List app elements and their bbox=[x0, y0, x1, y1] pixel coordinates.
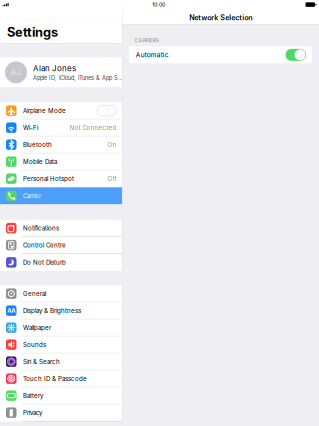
staticText: Siri & Search bbox=[23, 358, 60, 365]
button[interactable]: Touch ID & Passcode bbox=[0, 370, 122, 387]
staticText: Wallpaper bbox=[23, 324, 51, 331]
button[interactable]: Sounds bbox=[0, 336, 122, 353]
button[interactable]: Personal Hotspot bbox=[0, 170, 122, 187]
staticText: AJ bbox=[10, 68, 21, 77]
staticText: Display & Brightness bbox=[23, 307, 81, 314]
staticText: Not Connected bbox=[69, 124, 116, 131]
staticText: Sounds bbox=[23, 341, 46, 348]
staticText: Alan Jones bbox=[33, 64, 76, 73]
button[interactable]: Wallpaper bbox=[0, 319, 122, 336]
button[interactable]: Control Centre bbox=[0, 237, 122, 254]
staticText: 10:00 bbox=[152, 1, 165, 8]
staticText: Do Not Disturb bbox=[23, 259, 66, 266]
button[interactable]: Battery bbox=[0, 387, 122, 404]
staticText: Bluetooth bbox=[23, 141, 52, 148]
button[interactable]: Automatic bbox=[129, 46, 312, 63]
staticText: CARRIERS bbox=[134, 37, 158, 44]
button[interactable]: Notifications bbox=[0, 220, 122, 237]
button[interactable]: Wi-Fi bbox=[0, 119, 122, 136]
button[interactable]: AJ bbox=[0, 57, 122, 87]
staticText: Wi-Fi bbox=[23, 124, 38, 131]
button[interactable]: General bbox=[0, 285, 122, 302]
staticText: Network Selection bbox=[189, 13, 252, 22]
button[interactable]: Mobile Data bbox=[0, 153, 122, 170]
staticText: Airplane Mode bbox=[23, 107, 66, 114]
button[interactable]: Airplane Mode bbox=[0, 102, 122, 119]
staticText: Off bbox=[107, 175, 116, 182]
staticText: General bbox=[23, 290, 46, 297]
staticText: Privacy bbox=[23, 409, 42, 416]
staticText: Personal Hotspot bbox=[23, 175, 74, 182]
staticText: Battery bbox=[23, 392, 43, 399]
button[interactable]: Carrier bbox=[0, 187, 122, 204]
button[interactable]: Siri & Search bbox=[0, 353, 122, 370]
staticText: Control Centre bbox=[23, 241, 66, 249]
staticText: On bbox=[107, 141, 116, 148]
staticText: Automatic bbox=[136, 51, 169, 59]
button[interactable]: Privacy bbox=[0, 404, 122, 421]
staticText: Carrier bbox=[23, 192, 41, 200]
staticText: Apple ID, iCloud, iTunes & App St… bbox=[33, 74, 123, 81]
staticText: Mobile Data bbox=[23, 158, 57, 165]
button[interactable]: Do Not Disturb bbox=[0, 254, 122, 271]
staticText: AA bbox=[7, 307, 15, 314]
staticText: Notifications bbox=[23, 224, 59, 232]
staticText: Settings bbox=[7, 24, 58, 40]
staticText: Touch ID & Passcode bbox=[23, 375, 87, 382]
button[interactable]: Bluetooth bbox=[0, 136, 122, 153]
button[interactable]: AA bbox=[0, 302, 122, 319]
